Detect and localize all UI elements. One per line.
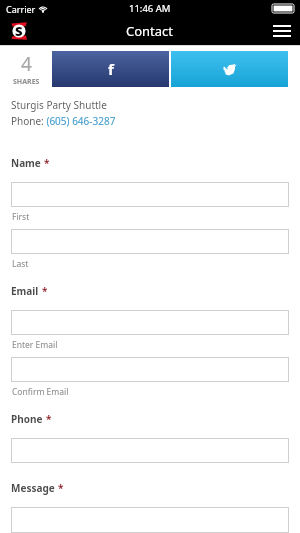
button[interactable]: Home [8, 20, 30, 42]
staticText: SHARES [13, 77, 40, 87]
button[interactable]: Share on Twitter [171, 51, 288, 87]
staticText: Last [12, 258, 29, 270]
staticText: First [12, 211, 30, 223]
button[interactable] [11, 507, 289, 533]
staticText: * [46, 412, 52, 426]
staticText: Message [11, 481, 55, 495]
staticText: f [108, 59, 114, 79]
staticText: Enter Email [12, 339, 58, 351]
button[interactable]: Share on Facebook [52, 51, 169, 87]
button[interactable] [11, 438, 289, 463]
staticText: Phone [11, 412, 43, 426]
staticText: Contact [126, 22, 174, 40]
staticText: S [15, 22, 23, 40]
staticText: Confirm Email [12, 386, 69, 398]
staticText: 11:46 AM [129, 2, 171, 15]
button[interactable] [11, 229, 289, 254]
button[interactable] [11, 357, 289, 382]
staticText: 4 [21, 51, 32, 77]
button[interactable] [11, 182, 289, 207]
staticText: * [42, 284, 48, 298]
staticText: * [44, 156, 50, 170]
staticText: Email [11, 284, 39, 298]
staticText: Carrier [6, 3, 36, 15]
button[interactable]: Menu [272, 21, 292, 41]
button[interactable] [11, 310, 289, 335]
button[interactable]: Phone: (605) 646-3287 [11, 114, 116, 128]
staticText: Name [11, 156, 41, 170]
staticText: * [58, 481, 64, 495]
staticText: Sturgis Party Shuttle [11, 98, 107, 112]
